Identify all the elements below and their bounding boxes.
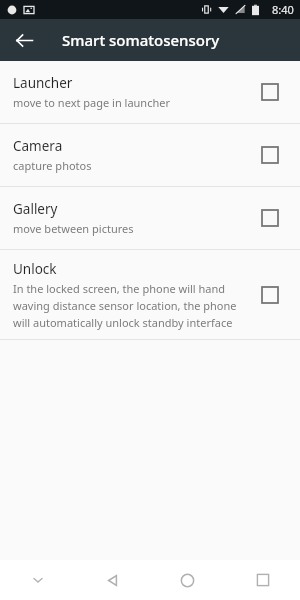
button[interactable]: Recent apps [225, 560, 300, 600]
staticText: Gallery [13, 200, 58, 218]
staticText: move to next page in launcher [13, 95, 170, 110]
staticText: will automatically unlock standby interf… [13, 315, 233, 330]
button[interactable]: Camera checkbox [253, 138, 287, 172]
button[interactable]: Unlock checkbox [253, 278, 287, 312]
staticText: 8:40 [272, 2, 294, 17]
button[interactable]: Back [75, 560, 150, 600]
button[interactable]: Gallery [0, 187, 300, 249]
button[interactable]: Back [6, 22, 42, 58]
staticText: capture photos [13, 158, 92, 173]
button[interactable]: Home [150, 560, 225, 600]
button[interactable]: Launcher [0, 61, 300, 123]
button[interactable]: Launcher checkbox [253, 75, 287, 109]
staticText: move between pictures [13, 221, 134, 236]
staticText: Smart somatosensory [62, 30, 220, 50]
staticText: Camera [13, 137, 63, 155]
button[interactable]: Hide keyboard [0, 560, 75, 600]
button[interactable]: Gallery checkbox [253, 201, 287, 235]
staticText: In the locked screen, the phone will han… [13, 281, 226, 296]
staticText: Unlock [13, 260, 57, 278]
button[interactable]: Camera [0, 124, 300, 186]
button[interactable]: Unlock [0, 250, 300, 339]
staticText: Launcher [13, 74, 73, 92]
staticText: waving distance sensor location, the pho… [13, 298, 237, 313]
